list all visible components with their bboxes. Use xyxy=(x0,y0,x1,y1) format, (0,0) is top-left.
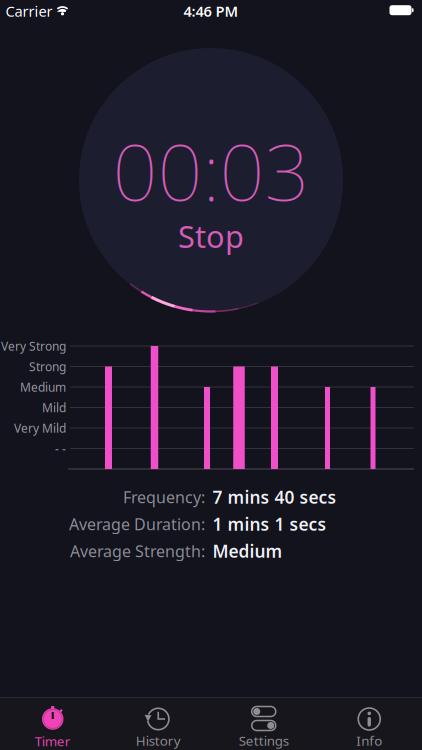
staticText: Carrier xyxy=(5,1,52,21)
staticText: Medium xyxy=(212,539,282,562)
staticText: - - xyxy=(55,440,66,456)
staticText: Medium xyxy=(20,379,66,395)
staticText: Very Strong xyxy=(1,338,66,354)
staticText: Average Strength: xyxy=(70,540,205,562)
staticText: Average Duration: xyxy=(69,513,205,535)
staticText: 7 mins 40 secs xyxy=(212,485,336,508)
staticText: Strong xyxy=(29,358,66,374)
staticText: Info xyxy=(356,732,382,749)
staticText: Mild xyxy=(42,399,66,415)
staticText: 00:03 xyxy=(112,118,309,222)
staticText: Stop xyxy=(178,216,244,256)
staticText: Very Mild xyxy=(14,420,66,436)
staticText: History xyxy=(136,732,181,749)
staticText: Frequency: xyxy=(123,486,205,508)
staticText: 1 mins 1 secs xyxy=(212,512,326,535)
staticText: Timer xyxy=(35,732,71,750)
staticText: Settings xyxy=(239,732,289,749)
staticText: 4:46 PM xyxy=(183,1,238,21)
